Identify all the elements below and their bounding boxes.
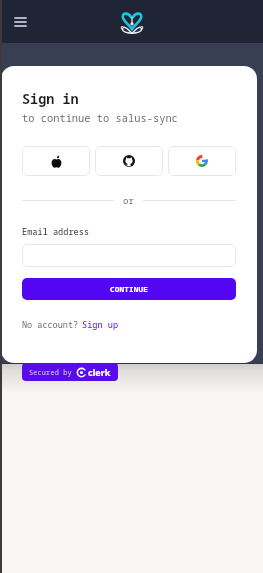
staticText: CONTINUE xyxy=(110,284,149,294)
staticText: Email address xyxy=(22,226,90,238)
button[interactable]: Sign in with Google xyxy=(168,146,236,176)
staticText: Secured by xyxy=(29,368,72,377)
staticText: Sign in xyxy=(22,90,79,108)
button[interactable]: CONTINUE xyxy=(22,278,236,300)
button[interactable]: Email address field xyxy=(22,244,236,267)
button[interactable]: Menu xyxy=(8,10,32,34)
button[interactable]: Sign up xyxy=(82,319,119,331)
button[interactable]: Secured by xyxy=(22,363,118,381)
staticText: clerk xyxy=(88,366,111,378)
staticText: No account? xyxy=(22,319,79,331)
button[interactable]: Sign in with Apple xyxy=(22,146,90,176)
staticText: Sign up xyxy=(82,319,119,331)
staticText: or xyxy=(123,194,134,206)
button[interactable]: Sign in with GitHub xyxy=(95,146,163,176)
staticText: to continue to salus-sync xyxy=(22,111,178,125)
